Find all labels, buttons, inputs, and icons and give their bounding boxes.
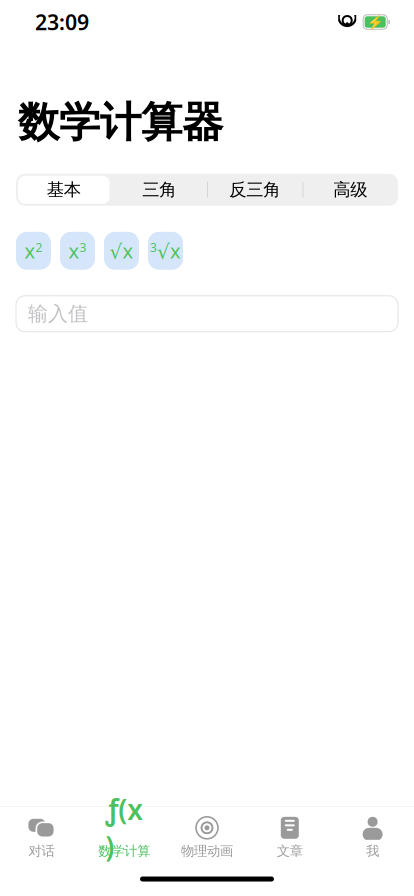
staticText: √x (109, 237, 133, 264)
staticText: 物理动画 (181, 843, 233, 859)
button[interactable]: 3 (148, 232, 183, 270)
staticText: 基本 (47, 179, 81, 200)
staticText: x (24, 237, 35, 264)
staticText: ⚡ (367, 14, 384, 30)
button[interactable]: 我 (331, 813, 414, 862)
staticText: 文章 (277, 843, 303, 859)
staticText: 3 (150, 239, 157, 255)
button[interactable]: 基本 (16, 174, 111, 206)
button[interactable]: 对话 (0, 813, 83, 862)
staticText: √x (157, 237, 181, 264)
button[interactable]: 反三角 (207, 174, 302, 206)
button[interactable]: 三角 (111, 174, 207, 206)
staticText: 3 (79, 239, 86, 255)
staticText: 数学计算 (98, 843, 150, 859)
staticText: 输入值 (28, 301, 88, 326)
button[interactable]: x (60, 232, 95, 270)
staticText: 高级 (333, 179, 367, 200)
staticText: x (68, 237, 79, 264)
staticText: 反三角 (229, 179, 280, 200)
staticText: 数学计算器 (18, 97, 223, 148)
staticText: 2 (35, 239, 42, 255)
button[interactable]: √x (104, 232, 139, 270)
staticText: ƒ(x) (105, 791, 143, 865)
staticText: 对话 (28, 843, 54, 859)
button[interactable]: 高级 (302, 174, 398, 206)
staticText: 三角 (142, 179, 176, 200)
button[interactable]: x (16, 232, 51, 270)
staticText: 我 (366, 843, 379, 859)
staticText: 23:09 (35, 8, 89, 36)
button[interactable]: 物理动画 (166, 813, 248, 862)
button[interactable]: 文章 (248, 813, 331, 862)
button[interactable]: ƒ(x) (83, 813, 166, 862)
